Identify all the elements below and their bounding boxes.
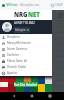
staticText: NRG <box>14 11 28 19</box>
staticText: Islem Gecmisi <box>7 47 28 51</box>
button[interactable]: Home <box>28 92 36 100</box>
staticText: Paket Satin Al <box>7 59 27 63</box>
button[interactable]: Recent apps <box>46 92 54 100</box>
staticText: Hesabim <box>7 35 20 39</box>
staticText: Destek Talebi <box>7 65 27 69</box>
staticText: Ayarlar <box>7 71 18 75</box>
staticText: Bakiyem <box>15 28 26 32</box>
button[interactable]: Tarifeler <box>0 52 52 58</box>
button[interactable]: Hesabim <box>0 34 52 40</box>
staticText: Mesaj Merkezim <box>7 41 31 45</box>
button[interactable]: Back <box>10 92 18 100</box>
staticText: AHMET YILMAZ <box>14 21 35 25</box>
staticText: Tarifeler <box>7 53 19 57</box>
staticText: NET <box>28 11 40 19</box>
button[interactable]: Ayarlar <box>0 70 52 76</box>
staticText: Mesajiniz var <box>20 3 40 7</box>
staticText: 14:05 <box>55 3 63 7</box>
button[interactable]: Bakiyem <box>14 27 30 33</box>
staticText: Yurt Disi Paketleri <box>14 83 38 87</box>
button[interactable]: Destek Talebi <box>0 64 52 70</box>
button[interactable]: Islem Gecmisi <box>0 46 52 52</box>
button[interactable]: Mesaj Merkezim <box>0 40 52 46</box>
button[interactable]: Paket Satin Al <box>0 58 52 64</box>
button[interactable]: Yurt Disi Paketleri <box>14 82 38 87</box>
staticText: NRGnet <box>6 3 18 7</box>
